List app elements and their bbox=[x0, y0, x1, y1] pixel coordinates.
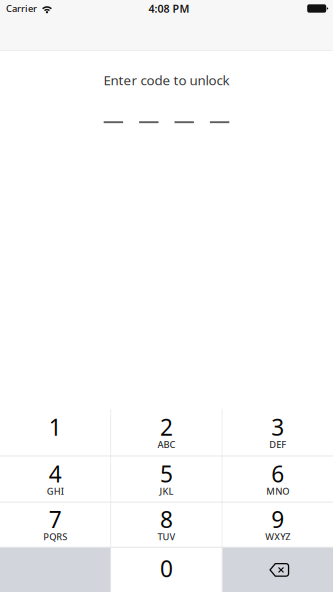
staticText: GHI bbox=[47, 485, 64, 497]
staticText: 9 bbox=[271, 504, 284, 534]
staticText: Enter code to unlock bbox=[103, 71, 229, 89]
button[interactable]: 1 bbox=[0, 409, 110, 456]
button[interactable]: 5 bbox=[111, 457, 222, 502]
staticText: 4 bbox=[49, 459, 62, 489]
staticText: MNO bbox=[266, 485, 289, 497]
button[interactable]: 8 bbox=[111, 503, 222, 547]
staticText: 0 bbox=[160, 553, 173, 583]
staticText: DEF bbox=[269, 438, 286, 451]
button[interactable]: 2 bbox=[111, 409, 222, 456]
staticText: 5 bbox=[160, 459, 173, 489]
staticText: JKL bbox=[159, 485, 173, 497]
button[interactable]: 7 bbox=[0, 503, 110, 547]
staticText: 6 bbox=[271, 459, 284, 489]
staticText: 8 bbox=[160, 504, 173, 534]
staticText: WXYZ bbox=[265, 531, 290, 543]
staticText: ABC bbox=[157, 438, 175, 451]
staticText: 1 bbox=[49, 412, 62, 442]
button[interactable]: 3 bbox=[222, 409, 333, 456]
staticText: Carrier bbox=[6, 2, 37, 15]
staticText: 4:08 PM bbox=[148, 1, 189, 16]
button[interactable]: 6 bbox=[222, 457, 333, 502]
staticText: TUV bbox=[157, 531, 175, 543]
button[interactable]: 9 bbox=[222, 503, 333, 547]
staticText: 3 bbox=[271, 412, 284, 442]
button[interactable]: 4 bbox=[0, 457, 110, 502]
staticText: PQRS bbox=[43, 531, 67, 543]
staticText: 7 bbox=[49, 504, 62, 534]
button[interactable]: 0 bbox=[111, 548, 222, 592]
staticText: 2 bbox=[160, 412, 173, 442]
button[interactable]: Delete bbox=[223, 548, 333, 592]
